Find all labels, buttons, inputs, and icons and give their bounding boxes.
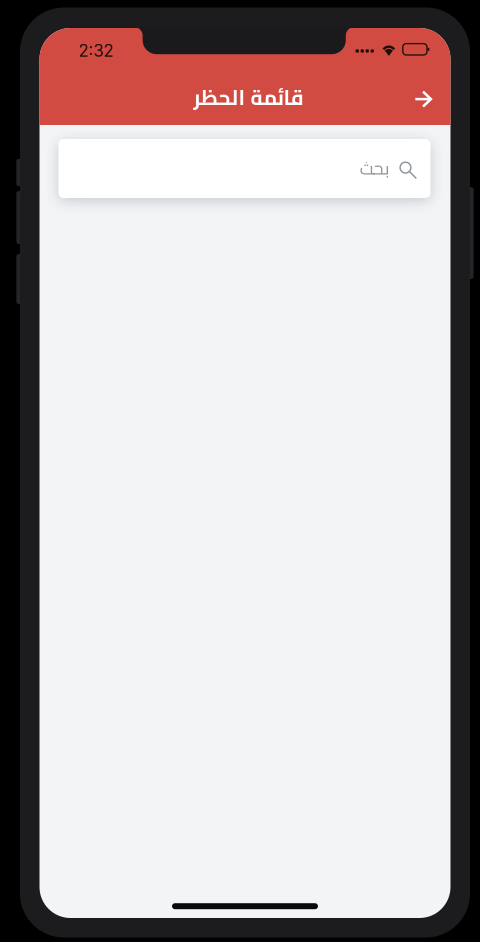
staticText: بحث [359, 152, 389, 184]
button[interactable]: Back [401, 77, 445, 121]
staticText: قائمة الحظر [193, 78, 303, 117]
button[interactable]: بحث [58, 139, 430, 198]
staticText: 2:32 [78, 40, 113, 61]
